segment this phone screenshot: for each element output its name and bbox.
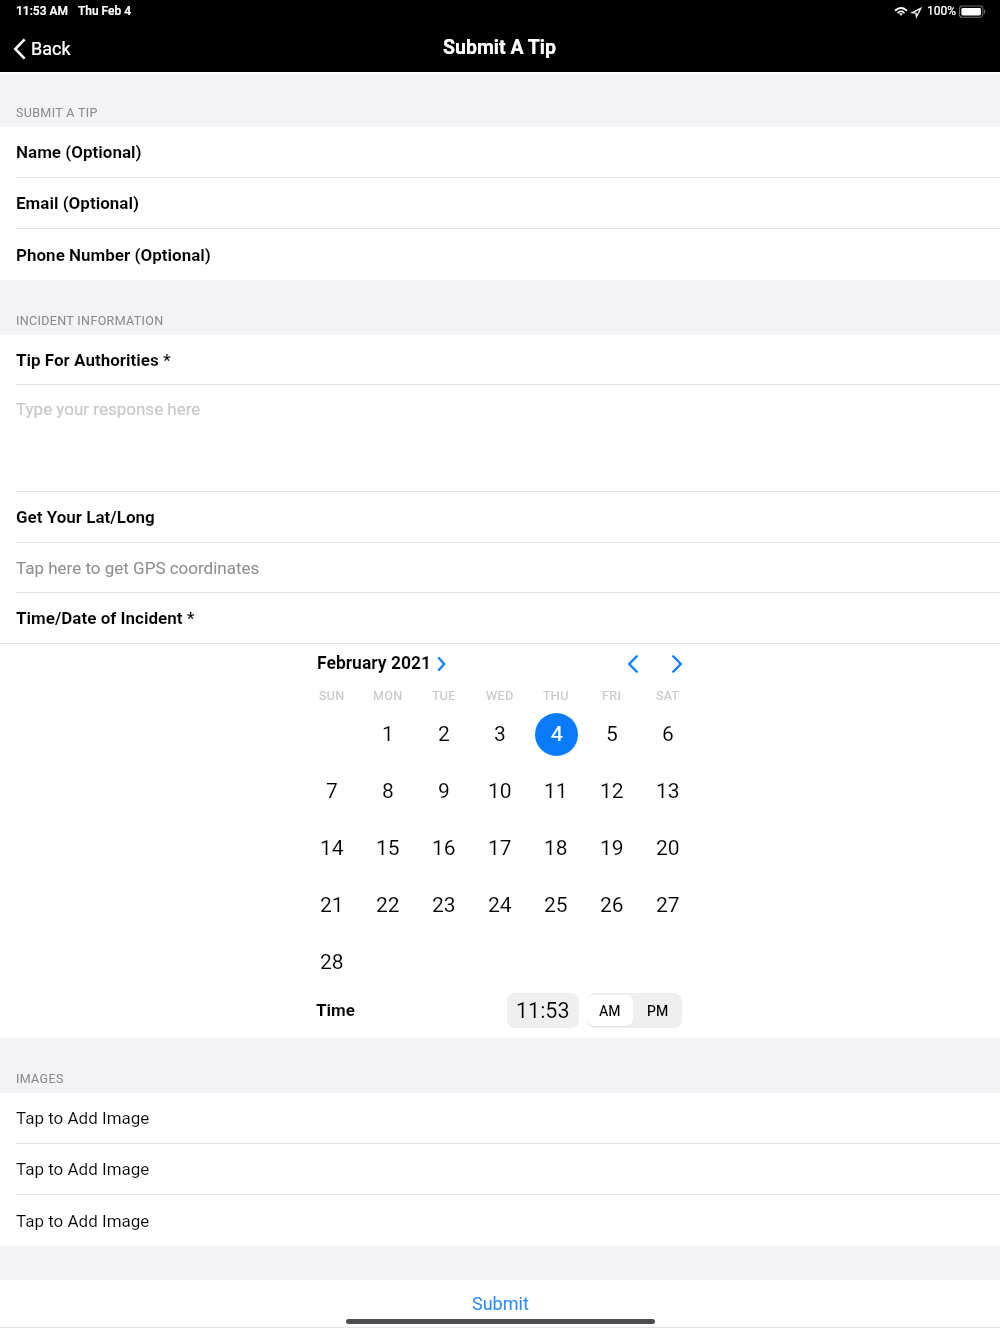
button[interactable]: 20 [640, 825, 696, 871]
staticText: Tap to Add Image [16, 1159, 150, 1179]
staticText: 11 [544, 779, 568, 804]
staticText: 14 [320, 836, 344, 861]
staticText: Tap to Add Image [16, 1108, 150, 1128]
button[interactable]: 4 [528, 711, 584, 757]
staticText: INCIDENT INFORMATION [16, 313, 164, 328]
staticText: MON [373, 688, 403, 703]
button[interactable]: 1 [360, 711, 416, 757]
staticText: 17 [488, 836, 512, 861]
staticText: 9 [438, 779, 450, 804]
staticText: 18 [544, 836, 568, 861]
staticText: FRI [602, 688, 622, 703]
button[interactable]: 27 [640, 882, 696, 928]
staticText: 26 [600, 893, 624, 918]
button[interactable]: 19 [584, 825, 640, 871]
staticText: 13 [656, 779, 680, 804]
staticText: Email (Optional) [16, 193, 139, 213]
staticText: 2 [438, 722, 450, 747]
button[interactable]: Next month [658, 645, 696, 683]
button[interactable]: 10 [472, 768, 528, 814]
button[interactable]: 9 [416, 768, 472, 814]
button[interactable]: 13 [640, 768, 696, 814]
staticText: Name (Optional) [16, 142, 142, 162]
staticText: 100% [927, 4, 957, 18]
staticText: 25 [544, 893, 568, 918]
staticText: 11:53 AM [16, 4, 68, 18]
button[interactable]: 28 [304, 939, 360, 985]
button[interactable]: Email (Optional) [0, 178, 1000, 228]
button[interactable]: Tap here to get GPS coordinates [0, 543, 1000, 592]
button[interactable]: Type your response here [0, 385, 1000, 491]
staticText: WED [486, 688, 514, 703]
button[interactable]: 8 [360, 768, 416, 814]
button[interactable]: 11:53 [507, 993, 579, 1028]
staticText: AM [599, 1003, 621, 1019]
staticText: 3 [494, 722, 506, 747]
button[interactable]: Submit [0, 1280, 1000, 1327]
staticText: 23 [432, 893, 456, 918]
button[interactable]: 24 [472, 882, 528, 928]
staticText: Type your response here [16, 399, 201, 419]
button[interactable]: Name (Optional) [0, 127, 1000, 177]
staticText: 20 [656, 836, 680, 861]
staticText: Tap here to get GPS coordinates [16, 558, 260, 578]
staticText: 24 [488, 893, 512, 918]
staticText: Time [316, 1000, 355, 1020]
staticText: 19 [600, 836, 624, 861]
button[interactable]: 26 [584, 882, 640, 928]
button[interactable]: 22 [360, 882, 416, 928]
button[interactable]: AM [587, 995, 633, 1026]
staticText: 16 [432, 836, 456, 861]
button[interactable]: 5 [584, 711, 640, 757]
button[interactable]: 16 [416, 825, 472, 871]
staticText: 8 [382, 779, 394, 804]
staticText: 27 [656, 893, 680, 918]
button[interactable]: 18 [528, 825, 584, 871]
staticText: Submit A Tip [443, 36, 557, 59]
button[interactable]: 21 [304, 882, 360, 928]
staticText: Get Your Lat/Long [16, 507, 155, 527]
button[interactable]: 3 [472, 711, 528, 757]
staticText: February 2021 [317, 653, 432, 674]
button[interactable]: Back [0, 31, 83, 66]
button[interactable]: 15 [360, 825, 416, 871]
staticText: SAT [656, 688, 680, 703]
staticText: 7 [326, 779, 338, 804]
staticText: 6 [662, 722, 674, 747]
button[interactable]: Tap to Add Image [0, 1144, 1000, 1194]
staticText: Tip For Authorities * [16, 350, 171, 370]
staticText: THU [543, 688, 569, 703]
staticText: Time/Date of Incident * [16, 608, 195, 628]
button[interactable]: 7 [304, 768, 360, 814]
button[interactable]: 6 [640, 711, 696, 757]
staticText: Tap to Add Image [16, 1211, 150, 1231]
button[interactable]: 12 [584, 768, 640, 814]
staticText: TUE [432, 688, 456, 703]
button[interactable]: February 2021 [311, 648, 451, 679]
button[interactable]: PM [633, 993, 682, 1028]
staticText: Thu Feb 4 [78, 4, 132, 18]
staticText: 15 [376, 836, 400, 861]
button[interactable]: Phone Number (Optional) [0, 229, 1000, 280]
button[interactable]: Tap to Add Image [0, 1093, 1000, 1143]
staticText: 1 [382, 722, 394, 747]
button[interactable]: 14 [304, 825, 360, 871]
button[interactable]: Time/Date of Incident * [0, 593, 1000, 643]
button[interactable]: 17 [472, 825, 528, 871]
staticText: 21 [320, 893, 344, 918]
staticText: 11:53 [516, 998, 570, 1023]
staticText: Submit [472, 1293, 529, 1314]
button[interactable]: Tap to Add Image [0, 1195, 1000, 1246]
staticText: 4 [551, 722, 563, 747]
button[interactable]: 23 [416, 882, 472, 928]
staticText: IMAGES [16, 1071, 64, 1086]
staticText: 10 [488, 779, 512, 804]
staticText: 22 [376, 893, 400, 918]
button[interactable]: Tip For Authorities * [0, 335, 1000, 384]
staticText: 12 [600, 779, 624, 804]
button[interactable]: 25 [528, 882, 584, 928]
button[interactable]: Previous month [614, 645, 652, 683]
button[interactable]: 11 [528, 768, 584, 814]
button[interactable]: 2 [416, 711, 472, 757]
button[interactable]: Get Your Lat/Long [0, 492, 1000, 542]
